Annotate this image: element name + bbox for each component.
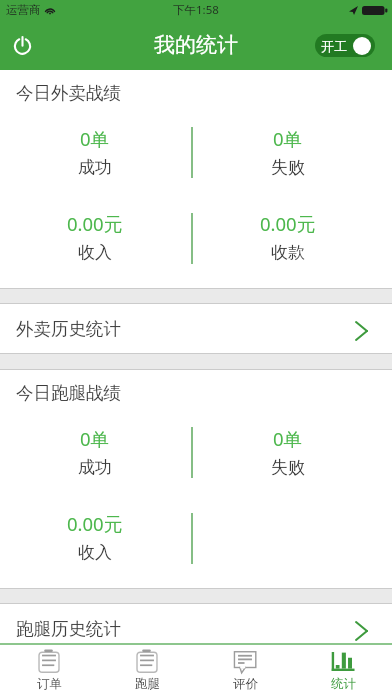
staticText: 运营商 bbox=[6, 3, 41, 17]
button[interactable]: 统计 bbox=[294, 645, 392, 696]
staticText: 0单 bbox=[80, 426, 110, 451]
staticText: 今日外卖战绩 bbox=[16, 82, 121, 104]
staticText: 开工 bbox=[321, 38, 347, 54]
staticText: 0.00元 bbox=[260, 211, 316, 236]
staticText: 成功 bbox=[78, 157, 112, 178]
staticText: 外卖历史统计 bbox=[16, 318, 121, 340]
button[interactable]: Power bbox=[4, 27, 40, 63]
staticText: 评价 bbox=[233, 676, 258, 692]
staticText: 收款 bbox=[271, 242, 305, 263]
staticText: 收入 bbox=[78, 242, 112, 263]
staticText: 0单 bbox=[273, 426, 303, 451]
staticText: 统计 bbox=[331, 676, 356, 692]
button[interactable]: 跑腿历史统计 bbox=[0, 604, 392, 643]
button[interactable]: 开工 bbox=[315, 34, 375, 57]
staticText: 成功 bbox=[78, 457, 112, 478]
staticText: 下午1:58 bbox=[173, 2, 219, 18]
staticText: 收入 bbox=[78, 542, 112, 563]
staticText: 跑腿 bbox=[135, 676, 160, 692]
staticText: 今日跑腿战绩 bbox=[16, 382, 121, 404]
staticText: 0单 bbox=[273, 126, 303, 151]
staticText: 0单 bbox=[80, 126, 110, 151]
staticText: 订单 bbox=[37, 676, 62, 692]
button[interactable]: 订单 bbox=[0, 645, 98, 696]
staticText: 失败 bbox=[271, 157, 305, 178]
staticText: 失败 bbox=[271, 457, 305, 478]
staticText: 0.00元 bbox=[67, 511, 123, 536]
button[interactable]: 跑腿 bbox=[98, 645, 196, 696]
button[interactable]: 评价 bbox=[196, 645, 294, 696]
staticText: 我的统计 bbox=[154, 32, 238, 58]
button[interactable]: 外卖历史统计 bbox=[0, 304, 392, 353]
staticText: 跑腿历史统计 bbox=[16, 618, 121, 640]
staticText: 0.00元 bbox=[67, 211, 123, 236]
